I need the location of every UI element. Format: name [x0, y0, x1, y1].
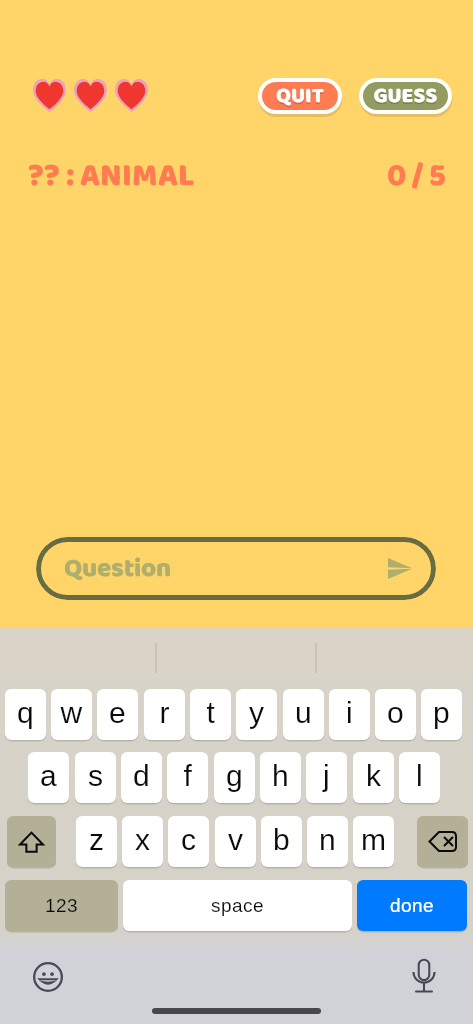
button[interactable] [144, 689, 185, 740]
other: Life [74, 79, 107, 112]
other: Life [115, 79, 148, 112]
button[interactable] [121, 752, 162, 803]
button[interactable] [353, 816, 394, 867]
button[interactable] [51, 689, 92, 740]
button[interactable] [214, 752, 255, 803]
button[interactable] [5, 880, 118, 931]
button[interactable] [261, 816, 302, 867]
button[interactable] [75, 752, 116, 803]
button[interactable] [97, 689, 138, 740]
button[interactable] [399, 752, 440, 803]
button[interactable] [375, 689, 416, 740]
button[interactable] [5, 689, 46, 740]
button[interactable] [260, 752, 301, 803]
button[interactable] [76, 816, 117, 867]
button[interactable] [329, 689, 370, 740]
button[interactable] [122, 816, 163, 867]
button[interactable] [307, 816, 348, 867]
button[interactable]: Voice input [412, 959, 436, 993]
button[interactable]: Emoji keyboard [33, 962, 63, 992]
other: Life [33, 79, 66, 112]
button[interactable] [283, 689, 324, 740]
button[interactable] [306, 752, 347, 803]
other: Send [388, 558, 412, 579]
button[interactable] [167, 752, 208, 803]
button[interactable]: Send [36, 537, 436, 600]
button[interactable] [421, 689, 462, 740]
button[interactable] [357, 880, 467, 931]
button[interactable] [190, 689, 231, 740]
button[interactable] [28, 752, 69, 803]
button[interactable] [353, 752, 394, 803]
button[interactable]: Backspace [417, 816, 468, 867]
button[interactable] [262, 82, 338, 110]
button[interactable] [236, 689, 277, 740]
button[interactable] [168, 816, 209, 867]
button[interactable]: Shift [7, 816, 56, 867]
button[interactable] [123, 880, 352, 931]
button[interactable] [215, 816, 256, 867]
button[interactable] [363, 82, 448, 110]
